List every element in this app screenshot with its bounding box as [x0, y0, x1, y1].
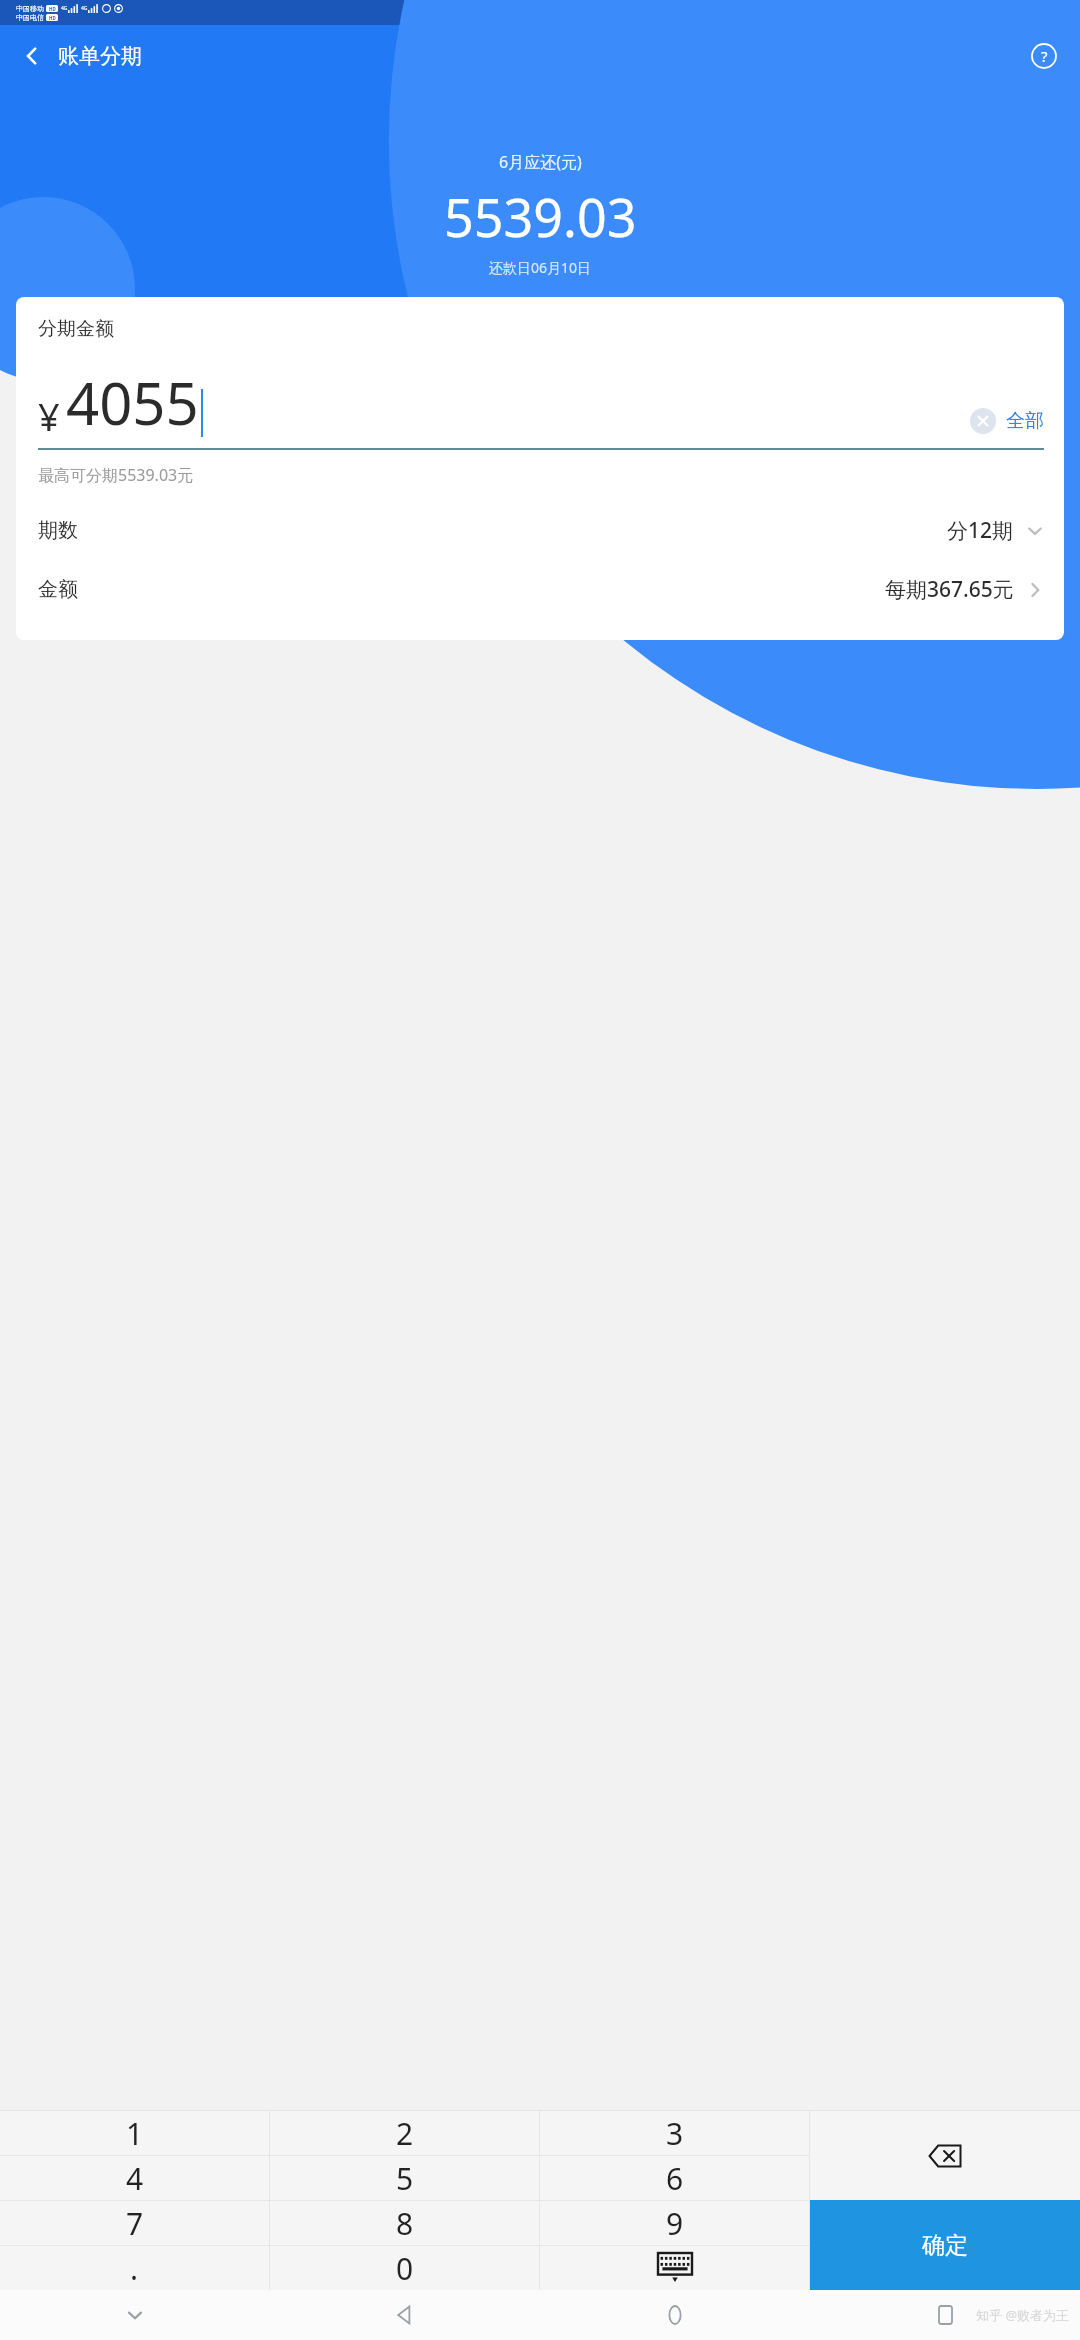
staticText: 3	[666, 2113, 684, 2154]
staticText: 全部	[1006, 409, 1044, 433]
staticText: 知乎 @败者为王	[976, 2306, 1070, 2324]
staticText: 7	[126, 2203, 144, 2244]
button[interactable]: Hide keyboard	[540, 2246, 809, 2290]
button[interactable]: Back	[10, 34, 54, 78]
staticText: HD	[49, 6, 56, 12]
button[interactable]: Home	[540, 2290, 810, 2340]
button[interactable]: 确定	[810, 2200, 1080, 2290]
button[interactable]: 1	[0, 2111, 269, 2155]
staticText: 5539.03	[444, 181, 637, 252]
staticText: 还款日06月10日	[489, 258, 592, 277]
staticText: 8	[396, 2203, 414, 2244]
staticText: 金额	[38, 577, 78, 602]
staticText: 中国移动	[16, 4, 44, 13]
button[interactable]: 0	[270, 2246, 539, 2290]
button[interactable]: 5	[270, 2156, 539, 2200]
button[interactable]: 4	[0, 2156, 269, 2200]
button[interactable]: .	[0, 2246, 269, 2290]
button[interactable]: 期数	[16, 512, 1064, 549]
staticText: 4G	[61, 5, 68, 12]
button[interactable]: 9	[540, 2201, 809, 2245]
staticText: 0	[396, 2248, 414, 2289]
staticText: 分12期	[947, 516, 1014, 545]
button[interactable]: 8	[270, 2201, 539, 2245]
staticText: 4G	[81, 5, 88, 12]
staticText: 4	[126, 2158, 144, 2199]
button[interactable]: 6	[540, 2156, 809, 2200]
staticText: ¥	[38, 390, 60, 442]
staticText: .	[130, 2248, 139, 2289]
button[interactable]: 3	[540, 2111, 809, 2155]
staticText: 确定	[922, 2231, 968, 2260]
staticText: 5	[396, 2158, 414, 2199]
staticText: 4055	[66, 363, 199, 442]
staticText: 6月应还(元)	[499, 151, 582, 173]
staticText: 账单分期	[58, 43, 142, 69]
button[interactable]: Help	[1022, 34, 1066, 78]
staticText: 2	[396, 2113, 414, 2154]
staticText: ?	[1041, 46, 1048, 66]
button[interactable]: Recents	[810, 2290, 1080, 2340]
staticText: 期数	[38, 518, 78, 543]
button[interactable]: 全部	[970, 408, 1044, 434]
staticText: 1	[126, 2113, 144, 2154]
button[interactable]: 金额	[16, 571, 1064, 608]
staticText: 每期367.65元	[885, 575, 1014, 604]
button[interactable]: Hide keyboard	[0, 2290, 270, 2340]
staticText: 6	[666, 2158, 684, 2199]
staticText: 分期金额	[38, 317, 114, 341]
staticText: HD	[49, 15, 56, 21]
staticText: 9	[666, 2203, 684, 2244]
button[interactable]: Backspace	[810, 2111, 1080, 2200]
staticText: 最高可分期5539.03元	[38, 464, 194, 486]
staticText: 中国电信	[16, 13, 44, 22]
button[interactable]: 2	[270, 2111, 539, 2155]
button[interactable]: 7	[0, 2201, 269, 2245]
button[interactable]: Back	[270, 2290, 540, 2340]
